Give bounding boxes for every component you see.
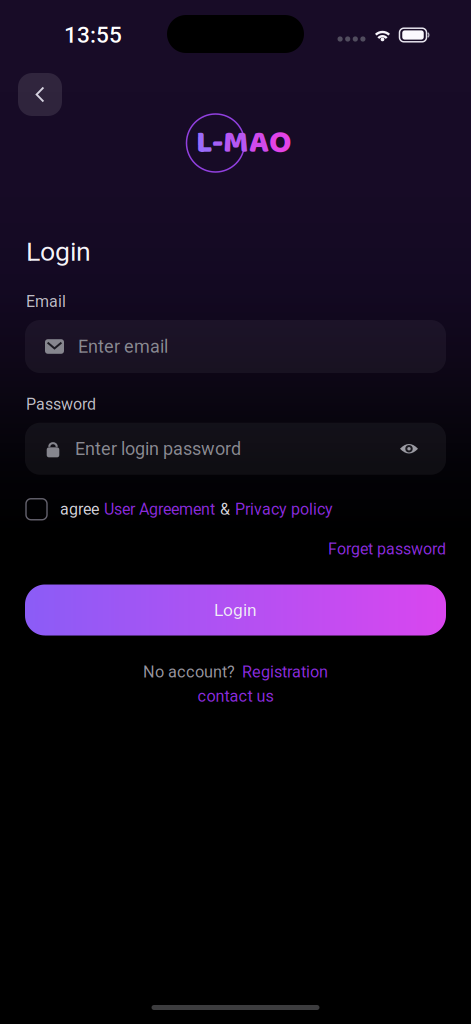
staticText: L xyxy=(196,117,212,169)
button[interactable]: Login xyxy=(25,584,446,635)
staticText: Enter login password xyxy=(75,438,241,459)
staticText: Registration xyxy=(242,662,328,682)
staticText: Login xyxy=(26,236,91,267)
staticText: M xyxy=(223,117,249,169)
staticText: 13:55 xyxy=(64,22,122,48)
button[interactable]: Back xyxy=(18,73,62,116)
button[interactable]: Forget password xyxy=(328,540,446,559)
button[interactable]: Show password xyxy=(390,430,428,468)
staticText: Login xyxy=(214,600,257,620)
staticText: Email xyxy=(26,292,66,311)
staticText: Privacy policy xyxy=(235,500,333,519)
staticText: A xyxy=(249,117,269,169)
staticText: No account? xyxy=(143,662,235,682)
staticText: Password xyxy=(26,395,96,414)
staticText: - xyxy=(212,117,223,169)
staticText: contact us xyxy=(197,687,273,706)
button[interactable]: User Agreement xyxy=(104,500,215,519)
button[interactable]: Agree to terms xyxy=(26,499,47,520)
staticText: & xyxy=(220,500,230,519)
staticText: User Agreement xyxy=(104,500,215,519)
button[interactable]: contact us xyxy=(197,687,273,706)
staticText: Enter email xyxy=(78,336,168,357)
staticText: Forget password xyxy=(328,540,446,559)
staticText: agree xyxy=(60,500,99,519)
button[interactable]: Privacy policy xyxy=(235,500,333,519)
button[interactable]: Registration xyxy=(242,662,328,682)
staticText: O xyxy=(269,117,291,169)
